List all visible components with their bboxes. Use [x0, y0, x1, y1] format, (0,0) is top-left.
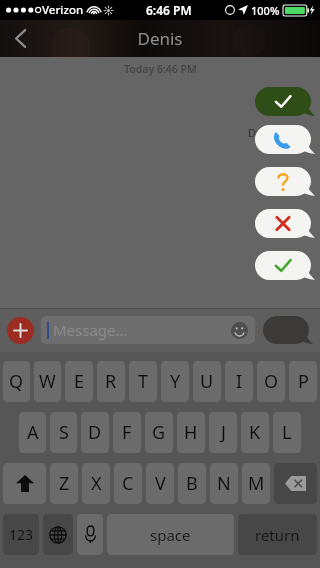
staticText: E [74, 369, 85, 394]
button[interactable]: Q [3, 361, 30, 402]
button[interactable]: D [81, 412, 109, 453]
button[interactable]: Back [0, 20, 40, 57]
button[interactable]: M [242, 463, 270, 504]
staticText: Denis [137, 27, 183, 50]
button[interactable]: X [82, 463, 110, 504]
staticText: W [39, 369, 56, 394]
staticText: O [264, 369, 279, 394]
staticText: T [138, 369, 149, 394]
staticText: N [217, 471, 231, 496]
staticText: Q [9, 369, 24, 394]
staticText: H [184, 420, 198, 445]
button[interactable]: H [177, 412, 205, 453]
staticText: 100% [251, 3, 280, 18]
staticText: Z [59, 471, 70, 496]
button[interactable]: F [113, 412, 141, 453]
button[interactable]: L [273, 412, 301, 453]
staticText: 123 [9, 525, 34, 544]
button[interactable]: Emoji [228, 319, 250, 341]
staticText: P [298, 369, 309, 394]
button[interactable]: N [210, 463, 238, 504]
button[interactable]: Message bubble [255, 209, 315, 238]
button[interactable]: U [193, 361, 221, 402]
staticText: I [236, 369, 243, 394]
staticText: 6:46 PM [146, 2, 192, 18]
staticText: R [105, 369, 117, 394]
button[interactable]: B [178, 463, 206, 504]
button[interactable]: Dictate [77, 514, 103, 555]
staticText: A [27, 420, 39, 445]
button[interactable]: Switch keyboard [43, 514, 73, 555]
button[interactable]: C [114, 463, 142, 504]
button[interactable]: S [50, 412, 77, 453]
button[interactable]: Message bubble [255, 167, 315, 196]
button[interactable]: A [19, 412, 46, 453]
staticText: K [249, 420, 261, 445]
button[interactable]: K [241, 412, 269, 453]
staticText: G [152, 420, 166, 445]
button[interactable]: Y [161, 361, 189, 402]
button[interactable]: V [146, 463, 174, 504]
staticText: X [91, 471, 102, 496]
staticText: D [88, 420, 102, 445]
staticText: L [282, 420, 292, 445]
button[interactable]: Message bubble [255, 87, 315, 116]
button[interactable]: Backspace [274, 463, 317, 504]
button[interactable]: T [129, 361, 157, 402]
button[interactable]: Message… [41, 316, 255, 344]
button[interactable]: E [65, 361, 93, 402]
staticText: U [200, 369, 214, 394]
button[interactable]: W [34, 361, 61, 402]
staticText: return [255, 525, 300, 545]
button[interactable]: Send [263, 316, 313, 344]
button[interactable]: Z [50, 463, 78, 504]
staticText: M [248, 471, 265, 496]
staticText: S [59, 420, 69, 445]
button[interactable]: J [209, 412, 237, 453]
staticText: F [122, 420, 132, 445]
button[interactable]: return [238, 514, 317, 555]
staticText: C [122, 471, 134, 496]
staticText: Message… [53, 320, 128, 340]
staticText: space [150, 525, 191, 545]
staticText: B [186, 471, 198, 496]
button[interactable]: Add attachment [7, 317, 34, 344]
staticText: De [248, 125, 263, 140]
button[interactable]: G [145, 412, 173, 453]
button[interactable]: 123 [3, 514, 39, 555]
staticText: V [155, 471, 166, 496]
button[interactable]: I [225, 361, 253, 402]
staticText: Y [170, 369, 181, 394]
button[interactable]: space [107, 514, 234, 555]
staticText: Today 6:46 PM [124, 62, 197, 76]
staticText: Verizon [42, 2, 84, 18]
button[interactable]: R [97, 361, 125, 402]
button[interactable]: P [289, 361, 317, 402]
button[interactable]: Message bubble [255, 125, 315, 154]
button[interactable]: Message bubble [255, 251, 315, 280]
button[interactable]: O [257, 361, 285, 402]
staticText: J [221, 420, 226, 445]
button[interactable]: Shift [3, 463, 46, 504]
